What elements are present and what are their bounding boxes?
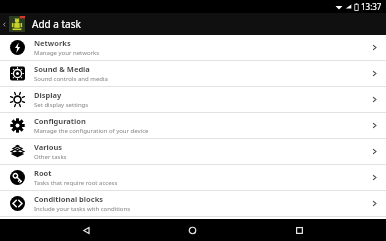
- button[interactable]: Back: [66, 219, 106, 241]
- staticText: Manage the configuration of your device: [34, 127, 149, 135]
- button[interactable]: Display: [0, 87, 386, 112]
- staticText: Configuration: [34, 116, 86, 126]
- staticText: Display: [34, 90, 62, 100]
- staticText: Include your tasks with conditions: [34, 205, 131, 213]
- button[interactable]: Recent apps: [279, 219, 319, 241]
- staticText: Tasks that require root access: [34, 179, 118, 187]
- button[interactable]: Root: [0, 165, 386, 190]
- staticText: Conditional blocks: [34, 194, 104, 204]
- button[interactable]: Configuration: [0, 113, 386, 138]
- staticText: Root: [34, 168, 52, 178]
- staticText: Add a task: [32, 17, 81, 31]
- staticText: Set display settings: [34, 101, 89, 109]
- button[interactable]: Conditional blocks: [0, 191, 386, 216]
- staticText: Sound controls and media: [34, 75, 108, 83]
- button[interactable]: Navigate up: [0, 13, 9, 35]
- button[interactable]: Networks: [0, 35, 386, 60]
- staticText: Various: [34, 142, 63, 152]
- staticText: Other tasks: [34, 153, 67, 161]
- staticText: Networks: [34, 38, 71, 48]
- button[interactable]: Home: [172, 219, 212, 241]
- staticText: 13:37: [361, 1, 382, 12]
- button[interactable]: Various: [0, 139, 386, 164]
- button[interactable]: Sound & Media: [0, 61, 386, 86]
- staticText: Sound & Media: [34, 64, 90, 74]
- staticText: Manage your networks: [34, 49, 100, 57]
